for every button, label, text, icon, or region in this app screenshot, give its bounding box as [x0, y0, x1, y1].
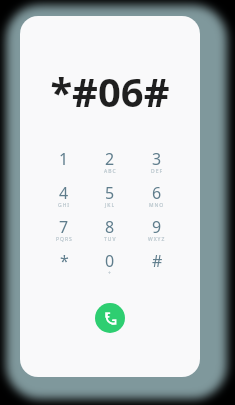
staticText: 0 — [105, 250, 115, 272]
staticText: 6 — [152, 182, 162, 204]
staticText: 2 — [105, 148, 115, 170]
button[interactable]: 0 — [87, 251, 133, 285]
staticText: 3 — [152, 148, 162, 170]
staticText: + — [108, 270, 112, 277]
button[interactable]: 5 — [87, 183, 133, 217]
staticText: 1 — [59, 148, 69, 170]
staticText: WXYZ — [148, 236, 166, 243]
button[interactable]: 8 — [87, 217, 133, 251]
staticText: MNO — [149, 202, 165, 209]
staticText: 7 — [59, 216, 69, 238]
button[interactable]: 6 — [134, 183, 180, 217]
button[interactable]: Call — [95, 303, 125, 333]
button[interactable]: 9 — [134, 217, 180, 251]
button[interactable]: 3 — [134, 149, 180, 183]
button[interactable]: 4 — [41, 183, 87, 217]
staticText: TUV — [104, 236, 117, 243]
staticText: # — [152, 250, 163, 272]
staticText: ABC — [104, 168, 117, 175]
button[interactable]: 1 — [41, 149, 87, 183]
staticText: PQRS — [56, 236, 73, 243]
staticText: GHI — [58, 202, 71, 209]
button[interactable]: 2 — [87, 149, 133, 183]
button[interactable]: * — [41, 251, 87, 285]
button[interactable]: # — [134, 251, 180, 285]
staticText: 5 — [105, 182, 115, 204]
staticText: 9 — [152, 216, 162, 238]
staticText: *#06# — [20, 64, 200, 108]
staticText: * — [60, 250, 69, 272]
staticText: DEF — [151, 168, 164, 175]
staticText: 4 — [59, 182, 69, 204]
staticText: 8 — [105, 216, 115, 238]
button[interactable]: 7 — [41, 217, 87, 251]
staticText: JKL — [105, 202, 116, 209]
